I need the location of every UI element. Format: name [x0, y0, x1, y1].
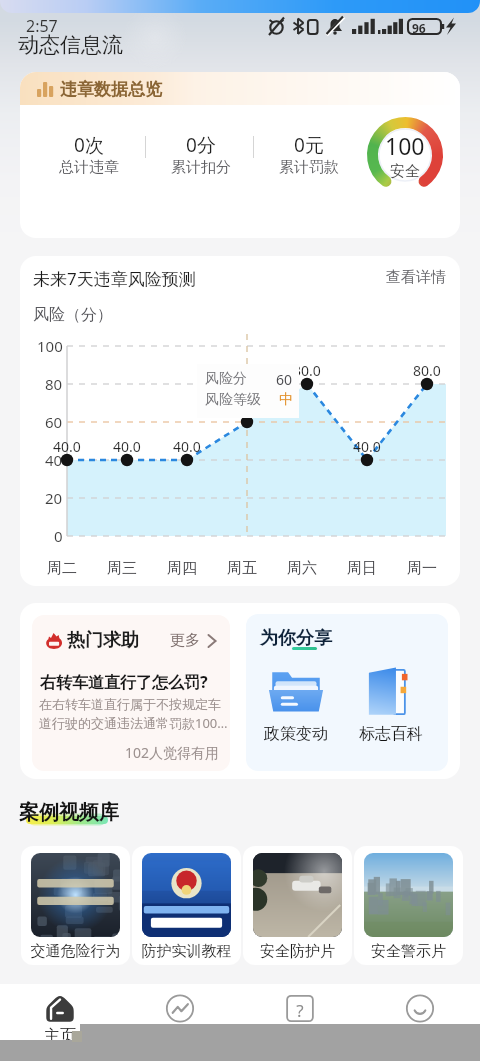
staticText: 周六	[287, 559, 317, 578]
staticText: 安全	[390, 162, 420, 181]
staticText: 30.0	[293, 361, 321, 379]
staticText: 102人觉得有用	[32, 743, 219, 762]
staticText: 2:57	[26, 15, 58, 37]
button[interactable]: 政策变动	[260, 661, 332, 744]
button[interactable]: 安全警示片	[354, 846, 463, 965]
staticText: 政策变动	[264, 724, 328, 744]
button[interactable]: 趋势	[150, 984, 210, 1044]
staticText: 80.0	[413, 361, 441, 379]
staticText: 中	[279, 391, 293, 409]
staticText: 风险分	[205, 370, 247, 388]
staticText: 0元	[265, 132, 353, 158]
button[interactable]: 帮助	[270, 984, 330, 1044]
staticText: 为你分享	[260, 627, 332, 650]
staticText: 周日	[347, 559, 377, 578]
button[interactable]: 热门求助	[32, 615, 230, 771]
button[interactable]: 违章数据总览	[20, 72, 460, 238]
staticText: 40.0	[173, 437, 201, 455]
staticText: 周五	[227, 559, 257, 578]
staticText: 96	[412, 20, 426, 36]
staticText: 20	[45, 488, 63, 508]
staticText: 40.0	[53, 437, 81, 455]
button[interactable]: 交通危险行为	[21, 846, 130, 965]
staticText: 在右转车道直行属于不按规定车 道行驶的交通违法通常罚款100…	[39, 696, 229, 732]
staticText: 60	[276, 370, 293, 389]
staticText: 周一	[407, 559, 437, 578]
staticText: 周四	[167, 559, 197, 578]
staticText: 累计扣分	[157, 158, 245, 177]
staticText: 60.0	[233, 399, 261, 417]
staticText: 0分	[157, 132, 245, 158]
staticText: 周三	[107, 559, 137, 578]
button[interactable]: 主页	[30, 984, 90, 1044]
staticText: 周二	[47, 559, 77, 578]
staticText: 热门求助	[67, 629, 139, 652]
staticText: 100	[37, 336, 63, 356]
staticText: 总计违章	[45, 158, 133, 177]
staticText: 风险等级	[205, 391, 261, 409]
staticText: 动态信息流	[18, 32, 123, 58]
staticText: 右转车道直行了怎么罚?	[40, 671, 208, 693]
staticText: 100	[385, 130, 425, 161]
button[interactable]: 为你分享	[246, 614, 448, 771]
button[interactable]: 标志百科	[355, 661, 427, 744]
button[interactable]: 查看详情	[386, 268, 446, 287]
staticText: 案例视频库	[19, 800, 119, 825]
staticText: 60	[45, 412, 63, 432]
staticText: 0次	[45, 132, 133, 158]
staticText: ?	[270, 999, 330, 1022]
staticText: 40.0	[353, 437, 381, 455]
staticText: 主页	[30, 1026, 90, 1046]
staticText: 安全防护片	[243, 942, 352, 961]
staticText: 标志百科	[359, 724, 423, 744]
staticText: 更多	[170, 631, 200, 650]
button[interactable]: 我的	[390, 984, 450, 1044]
staticText: 风险（分）	[33, 305, 113, 325]
staticText: 防护实训教程	[132, 942, 241, 961]
staticText: 0	[54, 526, 63, 546]
staticText: 交通危险行为	[21, 942, 130, 961]
button[interactable]: 安全防护片	[243, 846, 352, 965]
staticText: 80	[45, 374, 63, 394]
staticText: 安全警示片	[354, 942, 463, 961]
staticText: 未来7天违章风险预测	[33, 267, 196, 290]
staticText: 累计罚款	[265, 158, 353, 177]
staticText: 违章数据总览	[60, 79, 162, 100]
staticText: 40	[45, 450, 63, 470]
staticText: 40.0	[113, 437, 141, 455]
button[interactable]: 防护实训教程	[132, 846, 241, 965]
